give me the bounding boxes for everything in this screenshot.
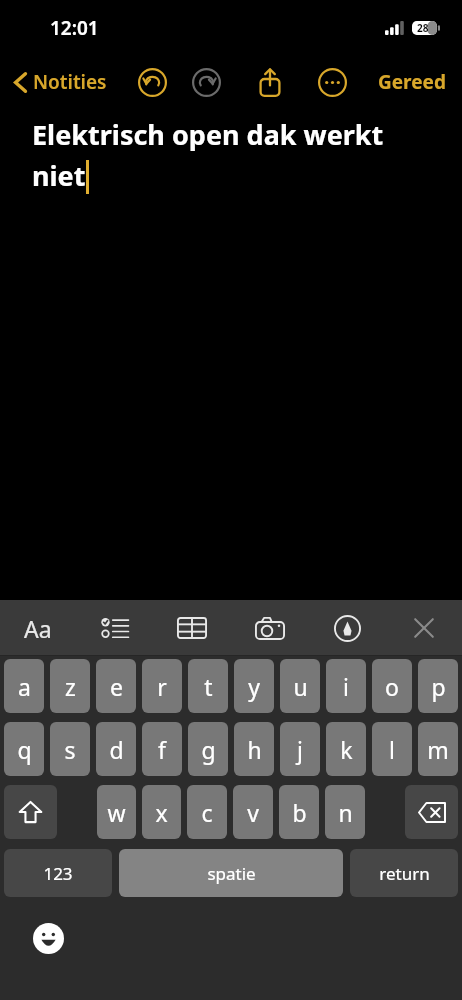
button[interactable]: g: [188, 722, 228, 776]
staticText: i: [343, 671, 349, 702]
staticText: t: [204, 671, 213, 702]
staticText: x: [155, 797, 168, 828]
button[interactable]: h: [234, 722, 274, 776]
button[interactable]: spatie: [119, 849, 343, 897]
button[interactable]: y: [234, 659, 274, 713]
button[interactable]: a: [4, 659, 44, 713]
button[interactable]: t: [188, 659, 228, 713]
button[interactable]: f: [142, 722, 182, 776]
button[interactable]: m: [418, 722, 458, 776]
staticText: o: [385, 671, 399, 702]
staticText: Aa: [24, 613, 52, 644]
staticText: spatie: [207, 862, 256, 885]
staticText: g: [201, 734, 216, 765]
staticText: y: [248, 671, 260, 702]
staticText: niet: [32, 157, 86, 194]
button[interactable]: s: [50, 722, 90, 776]
button[interactable]: Sluiten: [402, 606, 446, 650]
staticText: z: [65, 671, 76, 702]
staticText: return: [379, 862, 430, 885]
button[interactable]: l: [372, 722, 412, 776]
button[interactable]: w: [97, 785, 136, 839]
button[interactable]: Checklist: [93, 606, 137, 650]
button[interactable]: p: [418, 659, 458, 713]
button[interactable]: Shift: [4, 785, 57, 839]
staticText: a: [18, 671, 31, 702]
staticText: s: [64, 734, 76, 765]
button[interactable]: z: [50, 659, 90, 713]
staticText: h: [247, 734, 262, 765]
button[interactable]: v: [233, 785, 273, 839]
staticText: c: [201, 797, 213, 828]
staticText: Notities: [33, 69, 107, 95]
staticText: q: [17, 734, 32, 765]
button[interactable]: e: [96, 659, 136, 713]
button[interactable]: c: [187, 785, 227, 839]
button[interactable]: 123: [4, 849, 112, 897]
staticText: 28: [417, 21, 429, 35]
staticText: Elektrisch open dak werkt: [32, 116, 384, 153]
button[interactable]: o: [372, 659, 412, 713]
button[interactable]: u: [280, 659, 320, 713]
staticText: n: [338, 797, 353, 828]
button[interactable]: d: [96, 722, 136, 776]
button[interactable]: k: [326, 722, 366, 776]
staticText: l: [389, 734, 395, 765]
staticText: 12:01: [50, 15, 99, 41]
button[interactable]: Markeringen: [325, 606, 369, 650]
button[interactable]: Delen: [251, 63, 289, 101]
button[interactable]: q: [4, 722, 44, 776]
button[interactable]: Meer: [313, 63, 351, 101]
staticText: j: [297, 734, 303, 765]
staticText: w: [107, 797, 126, 828]
staticText: b: [292, 797, 307, 828]
button[interactable]: r: [142, 659, 182, 713]
staticText: p: [431, 671, 446, 702]
button[interactable]: Emoji: [30, 920, 66, 956]
button[interactable]: j: [280, 722, 320, 776]
button[interactable]: Opnieuw: [187, 63, 225, 101]
button[interactable]: Camera: [248, 606, 292, 650]
staticText: d: [109, 734, 124, 765]
button[interactable]: Ongedaan maken: [133, 63, 171, 101]
button[interactable]: Gereed: [372, 63, 452, 101]
staticText: u: [293, 671, 308, 702]
button[interactable]: n: [325, 785, 365, 839]
staticText: 123: [43, 862, 73, 885]
staticText: m: [427, 734, 449, 765]
button[interactable]: Backspace: [405, 785, 458, 839]
button[interactable]: Tekststijl: [16, 606, 60, 650]
staticText: f: [158, 734, 166, 765]
button[interactable]: b: [279, 785, 319, 839]
button[interactable]: i: [326, 659, 366, 713]
button[interactable]: Notities: [10, 63, 111, 101]
staticText: e: [110, 671, 123, 702]
staticText: k: [340, 734, 353, 765]
button[interactable]: x: [142, 785, 181, 839]
staticText: v: [247, 797, 259, 828]
staticText: Gereed: [378, 69, 446, 95]
button[interactable]: Tabel: [170, 606, 214, 650]
staticText: r: [157, 671, 167, 702]
button[interactable]: return: [350, 849, 458, 897]
